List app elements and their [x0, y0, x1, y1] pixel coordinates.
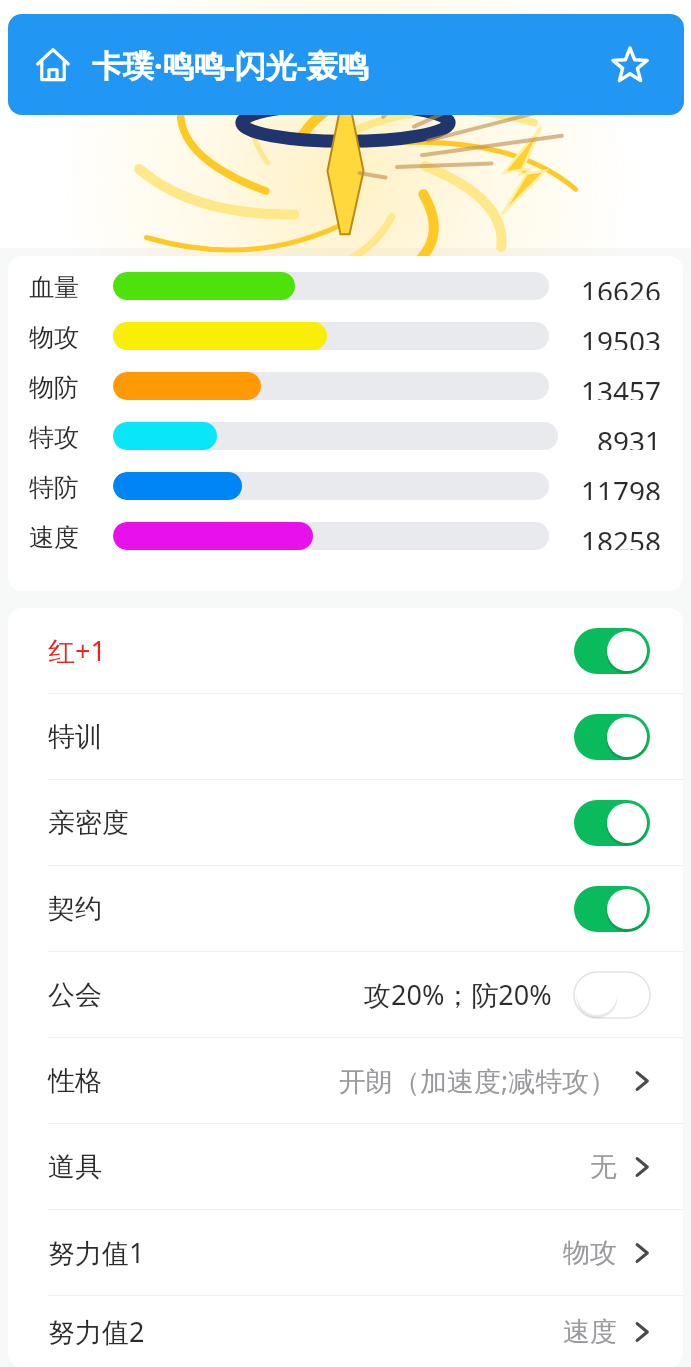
- staticText: 道具: [48, 1150, 102, 1184]
- button[interactable]: Enabled: [574, 886, 650, 932]
- staticText: 物防: [29, 372, 113, 400]
- button[interactable]: Enabled: [574, 800, 650, 846]
- staticText: 8931: [597, 422, 662, 450]
- staticText: 亲密度: [48, 806, 129, 840]
- button[interactable]: Favorite: [604, 39, 656, 91]
- staticText: 红+1: [48, 632, 106, 669]
- button[interactable]: 红+1: [8, 608, 683, 693]
- staticText: 性格: [48, 1064, 102, 1098]
- button[interactable]: 契约: [8, 866, 683, 951]
- button[interactable]: Enabled: [574, 628, 650, 674]
- staticText: 特防: [29, 472, 113, 500]
- staticText: 努力值1: [48, 1234, 145, 1271]
- staticText: 攻20%；防20%: [364, 976, 552, 1013]
- staticText: 11798: [581, 472, 662, 500]
- button[interactable]: 性格: [8, 1038, 683, 1123]
- staticText: 13457: [581, 372, 662, 400]
- button[interactable]: 亲密度: [8, 780, 683, 865]
- staticText: 血量: [29, 272, 113, 300]
- staticText: 契约: [48, 892, 102, 926]
- staticText: 18258: [581, 522, 662, 550]
- button[interactable]: 努力值2: [8, 1296, 683, 1367]
- staticText: 物攻: [563, 1236, 617, 1270]
- button[interactable]: 公会: [8, 952, 683, 1037]
- button[interactable]: Disabled: [574, 972, 650, 1018]
- staticText: 速度: [563, 1315, 617, 1349]
- button[interactable]: Home: [26, 38, 80, 92]
- staticText: 特训: [48, 720, 102, 754]
- button[interactable]: 特训: [8, 694, 683, 779]
- staticText: 19503: [581, 322, 662, 350]
- staticText: 无: [590, 1150, 617, 1184]
- staticText: 卡璞·鸣鸣-闪光-轰鸣: [92, 44, 369, 86]
- staticText: 物攻: [29, 322, 113, 350]
- staticText: 特攻: [29, 422, 113, 450]
- staticText: 16626: [581, 272, 662, 300]
- button[interactable]: 道具: [8, 1124, 683, 1209]
- staticText: 开朗（加速度;减特攻）: [339, 1062, 617, 1099]
- button[interactable]: Enabled: [574, 714, 650, 760]
- staticText: 速度: [29, 522, 113, 550]
- staticText: 努力值2: [48, 1313, 145, 1350]
- staticText: 公会: [48, 978, 102, 1012]
- button[interactable]: 努力值1: [8, 1210, 683, 1295]
